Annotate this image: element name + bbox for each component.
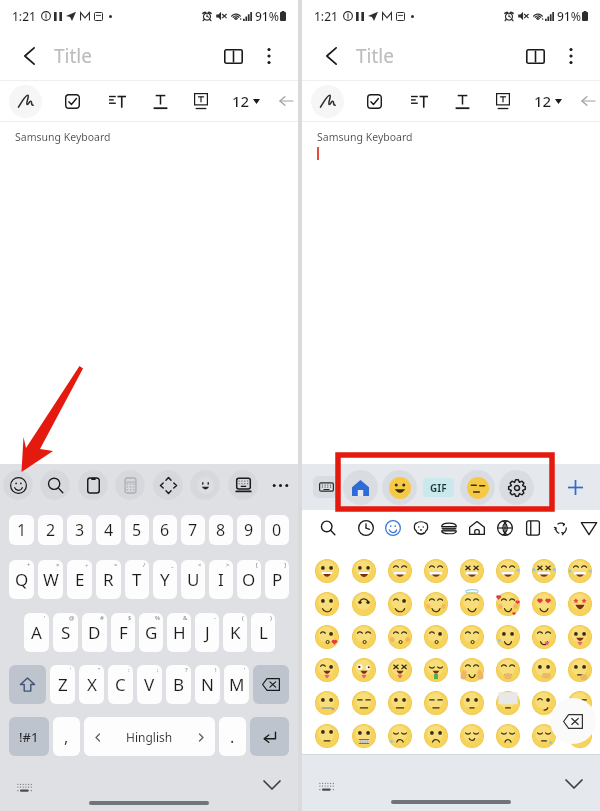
button[interactable]: Text box [186, 86, 216, 116]
button[interactable]: Emoji [454, 620, 490, 653]
button[interactable]: Symbols [549, 516, 573, 540]
button[interactable]: Emoji [454, 653, 490, 686]
button[interactable]: Emoji [526, 554, 562, 587]
button[interactable]: Keyboard layout [315, 775, 337, 797]
button[interactable]: Search [40, 470, 70, 500]
button[interactable]: Emoji [490, 587, 526, 620]
button[interactable]: Search [316, 516, 340, 540]
button[interactable]: Collapse toolbar [573, 86, 600, 116]
button[interactable]: Checklist [57, 86, 87, 116]
button[interactable]: Smileys [381, 516, 405, 540]
button[interactable]: Emoji [490, 653, 526, 686]
button[interactable]: Paragraph style [102, 86, 132, 116]
button[interactable]: Emoji [562, 554, 598, 587]
button[interactable]: ' [24, 613, 49, 652]
button[interactable]: Emoji [345, 620, 382, 653]
button[interactable]: Handwriting [311, 85, 344, 118]
button[interactable]: : [108, 665, 133, 704]
button[interactable]: Emoji [345, 587, 382, 620]
button[interactable]: & [167, 613, 191, 652]
button[interactable]: Back [316, 41, 346, 71]
button[interactable]: # [82, 613, 107, 652]
button[interactable]: ] [265, 560, 289, 599]
button[interactable]: Text format [145, 86, 175, 116]
button[interactable]: Shift [9, 665, 46, 704]
button[interactable]: Backspace [550, 698, 596, 744]
button[interactable]: Emoji [345, 554, 382, 587]
button[interactable]: 2 [38, 515, 63, 545]
button[interactable]: Activities [493, 516, 517, 540]
button[interactable]: Hide keyboard [561, 771, 587, 797]
button[interactable]: More options [254, 41, 284, 71]
button[interactable]: Keyboard settings [228, 470, 258, 500]
button[interactable]: ) [251, 613, 275, 652]
button[interactable]: Emoji [490, 719, 526, 752]
button[interactable]: Emoji [382, 554, 418, 587]
button[interactable]: Emoji [418, 587, 454, 620]
button[interactable]: [ [237, 560, 261, 599]
button[interactable]: - [195, 613, 219, 652]
button[interactable]: < [181, 560, 205, 599]
button[interactable]: Food [437, 516, 461, 540]
button[interactable]: More options [265, 470, 295, 500]
button[interactable]: Reading mode [520, 41, 550, 71]
button[interactable]: × [38, 560, 63, 599]
button[interactable]: + [9, 560, 34, 599]
button[interactable]: Checklist [359, 86, 389, 116]
button[interactable]: Emoji [418, 686, 454, 719]
button[interactable]: Emoji [418, 653, 454, 686]
button[interactable]: Keyboard [313, 476, 339, 498]
button[interactable]: Objects [521, 516, 545, 540]
button[interactable]: 12 [230, 87, 262, 115]
button[interactable]: Text box [488, 86, 518, 116]
button[interactable]: 3 [67, 515, 92, 545]
button[interactable]: ’ [224, 665, 249, 704]
button[interactable]: ÷ [67, 560, 92, 599]
button[interactable]: @ [53, 613, 78, 652]
button[interactable]: 0 [265, 515, 289, 545]
button[interactable]: Emoji home [343, 470, 378, 505]
button[interactable]: Settings [499, 470, 534, 505]
button[interactable]: . [219, 717, 246, 756]
button[interactable]: Emoji [345, 653, 382, 686]
button[interactable]: Hide keyboard [259, 772, 285, 798]
button[interactable]: Emoji [562, 719, 598, 752]
button[interactable]: Emoji [418, 719, 454, 752]
button[interactable]: Emoji [490, 686, 526, 719]
button[interactable]: Emoji [454, 686, 490, 719]
button[interactable]: Emoji [308, 719, 345, 752]
button[interactable]: = [96, 560, 121, 599]
button[interactable]: Emoji [308, 587, 345, 620]
button[interactable]: 8 [209, 515, 233, 545]
button[interactable]: ! [195, 665, 220, 704]
button[interactable]: $ [111, 613, 135, 652]
button[interactable]: % [139, 613, 163, 652]
button[interactable]: Emoji [382, 686, 418, 719]
button[interactable]: Emoji [526, 719, 562, 752]
button[interactable]: 4 [96, 515, 121, 545]
button[interactable]: " [79, 665, 104, 704]
button[interactable]: More options [556, 41, 586, 71]
button[interactable]: Collapse toolbar [271, 86, 301, 116]
button[interactable]: Handwriting [9, 85, 42, 118]
button[interactable]: , [53, 717, 80, 756]
button[interactable]: Emoji [382, 653, 418, 686]
button[interactable]: GIF [423, 478, 454, 497]
button[interactable]: Recent [354, 516, 378, 540]
button[interactable]: Emoji [562, 587, 598, 620]
button[interactable]: Emoji [3, 470, 33, 500]
button[interactable]: 5 [125, 515, 149, 545]
button[interactable]: Emoji [308, 554, 345, 587]
button[interactable]: Keyboard layout [13, 776, 35, 798]
button[interactable]: Emoji [382, 587, 418, 620]
button[interactable]: Clipboard [78, 470, 108, 500]
button[interactable]: ? [166, 665, 191, 704]
button[interactable]: 1 [9, 515, 34, 545]
button[interactable]: Travel [465, 516, 489, 540]
button[interactable]: Floating keyboard [153, 470, 183, 500]
button[interactable]: Emoji [308, 653, 345, 686]
button[interactable]: Emoji [382, 470, 417, 505]
button[interactable]: Stickers [460, 470, 495, 505]
button[interactable]: Emoji [562, 653, 598, 686]
button[interactable]: Enter [250, 717, 289, 756]
